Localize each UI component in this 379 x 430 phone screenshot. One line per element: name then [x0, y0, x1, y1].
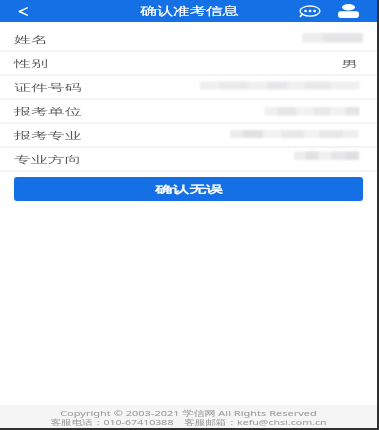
staticText: 客服电话：010-67410388 客服邮箱：kefu@chsi.com.cn: [50, 417, 327, 427]
staticText: 报考专业: [14, 129, 82, 142]
staticText: 证件号码: [14, 81, 82, 94]
button[interactable]: Back: [0, 0, 40, 22]
button[interactable]: 确认无误: [14, 177, 363, 201]
staticText: 专业方向: [14, 153, 82, 166]
staticText: 男: [341, 57, 358, 70]
button[interactable]: Messages: [294, 0, 326, 22]
staticText: 确认无误: [155, 183, 223, 196]
staticText: Copyright © 2003-2021 学信网 All Rights Res…: [60, 407, 317, 418]
staticText: 姓名: [14, 33, 48, 46]
button[interactable]: Account: [333, 0, 364, 22]
staticText: 报考单位: [14, 105, 82, 118]
staticText: 确认准考信息: [140, 4, 239, 19]
staticText: 性别: [14, 57, 48, 70]
